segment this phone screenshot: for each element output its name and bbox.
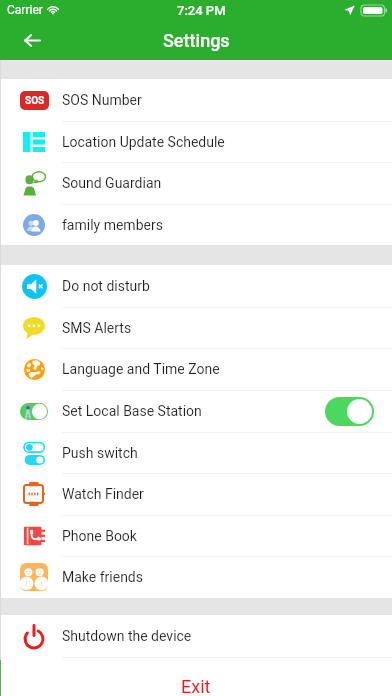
button[interactable]: Language and Time Zone: [0, 348, 392, 390]
staticText: Location Update Schedule: [62, 134, 225, 150]
staticText: Exit: [181, 676, 211, 696]
button[interactable]: Set Local Base Station: [0, 390, 392, 432]
button[interactable]: Shutdown the device: [0, 615, 392, 657]
staticText: Make friends: [62, 569, 143, 585]
staticText: Do not disturb: [62, 278, 150, 294]
button[interactable]: Exit: [0, 657, 392, 696]
button[interactable]: Phone Book: [0, 515, 392, 556]
staticText: Phone Book: [62, 528, 137, 544]
button[interactable]: Sound Guardian: [0, 162, 392, 204]
staticText: Set Local Base Station: [62, 403, 202, 419]
button[interactable]: Watch Finder: [0, 473, 392, 515]
button[interactable]: Back: [12, 20, 52, 60]
button[interactable]: Do not disturb: [0, 265, 392, 307]
staticText: Watch Finder: [62, 486, 144, 502]
staticText: Language and Time Zone: [62, 361, 220, 377]
button[interactable]: SOS: [0, 79, 392, 121]
button[interactable]: family members: [0, 204, 392, 245]
staticText: family members: [62, 217, 163, 233]
button[interactable]: SMS Alerts: [0, 307, 392, 348]
staticText: Carrier: [7, 3, 43, 17]
staticText: Shutdown the device: [62, 628, 192, 644]
button[interactable]: Location Update Schedule: [0, 121, 392, 162]
staticText: Sound Guardian: [62, 175, 162, 191]
staticText: SMS Alerts: [62, 320, 132, 336]
staticText: SOS: [25, 95, 45, 107]
button[interactable]: [325, 397, 374, 426]
staticText: 7:24 PM: [177, 3, 226, 18]
staticText: SOS Number: [62, 92, 142, 108]
staticText: Settings: [163, 30, 230, 51]
button[interactable]: Make friends: [0, 556, 392, 598]
button[interactable]: Push switch: [0, 432, 392, 473]
staticText: Push switch: [62, 445, 138, 461]
